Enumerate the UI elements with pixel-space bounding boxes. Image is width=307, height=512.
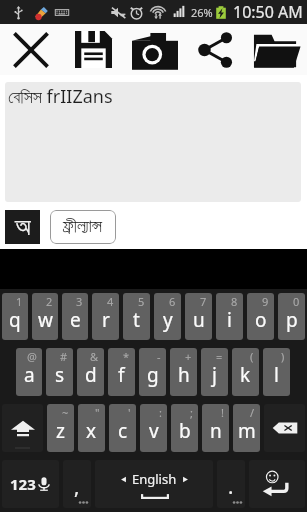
staticText: x (86, 418, 97, 444)
staticText: f (118, 362, 125, 388)
staticText: + (185, 349, 192, 364)
staticText: d (85, 362, 97, 388)
staticText: : (159, 405, 162, 420)
button[interactable]: # (46, 348, 73, 396)
staticText: English (132, 470, 177, 488)
staticText: q (9, 307, 21, 333)
button[interactable]: & (77, 348, 104, 396)
button[interactable]: Numbers and voice input (2, 460, 59, 508)
staticText: m (238, 418, 256, 444)
staticText: 26% (191, 5, 213, 20)
button[interactable]: ' (109, 404, 136, 452)
button[interactable]: 8 (216, 293, 243, 340)
staticText: ( (250, 349, 254, 364)
staticText: s (55, 362, 65, 388)
button[interactable]: বেসিস frIIZans (5, 82, 301, 202)
staticText: * (123, 349, 130, 364)
button[interactable]: 1 (2, 293, 28, 340)
staticText: . (228, 473, 234, 500)
button[interactable]: 7 (185, 293, 212, 340)
staticText: r (102, 307, 110, 333)
button[interactable]: ! (202, 404, 229, 452)
staticText: # (60, 349, 68, 364)
staticText: 4 (107, 294, 114, 309)
staticText: w (38, 307, 53, 333)
button[interactable]: 2 (32, 293, 58, 340)
staticText: , (74, 473, 80, 500)
button[interactable]: 3 (62, 293, 88, 340)
button[interactable]: * (108, 348, 135, 396)
staticText: a (24, 362, 35, 388)
staticText: 0 (293, 294, 300, 309)
button[interactable]: 4 (92, 293, 119, 340)
button[interactable]: Backspace (264, 404, 305, 452)
button[interactable]: Camera (124, 24, 185, 75)
staticText: c (118, 418, 128, 444)
button[interactable]: Save (62, 24, 124, 75)
staticText: 5 (138, 294, 145, 309)
button[interactable]: অ (5, 210, 40, 244)
staticText: p (286, 307, 298, 333)
staticText: u (193, 307, 205, 333)
button[interactable]: Share (185, 24, 246, 75)
staticText: j (212, 362, 217, 388)
staticText: 8 (231, 294, 238, 309)
button[interactable]: : (140, 404, 167, 452)
button[interactable]: ফ্রীল্যান্স (50, 210, 116, 244)
staticText: b (179, 418, 191, 444)
button[interactable]: = (201, 348, 228, 396)
button[interactable]: 5 (123, 293, 150, 340)
button[interactable]: - (139, 348, 166, 396)
staticText: @ (27, 349, 37, 364)
button[interactable]: ) (263, 348, 290, 396)
staticText: 1 (16, 294, 23, 309)
staticText: n (210, 418, 222, 444)
staticText: 2 (46, 294, 53, 309)
staticText: 9 (262, 294, 269, 309)
staticText: k (240, 362, 251, 388)
staticText: h (178, 362, 190, 388)
staticText: " (95, 405, 100, 420)
staticText: 3 (76, 294, 83, 309)
staticText: ! (221, 405, 224, 420)
staticText: ফ্রীল্যান্স (63, 218, 103, 236)
button[interactable]: 6 (154, 293, 181, 340)
button[interactable]: + (170, 348, 197, 396)
button[interactable]: ; (171, 404, 198, 452)
staticText: ) (281, 349, 285, 364)
button[interactable]: Enter (249, 460, 305, 508)
button[interactable]: Open folder (246, 24, 307, 75)
button[interactable]: Space (95, 460, 213, 508)
button[interactable]: @ (16, 348, 42, 396)
button[interactable]: Close (0, 24, 62, 75)
button[interactable]: 0 (278, 293, 305, 340)
staticText: t (133, 307, 140, 333)
staticText: o (255, 307, 267, 333)
button[interactable]: Shift (2, 404, 43, 452)
staticText: ; (190, 405, 193, 420)
staticText: y (163, 307, 173, 333)
button[interactable]: Period (217, 460, 245, 508)
staticText: ~ (62, 405, 69, 420)
staticText: z (56, 418, 65, 444)
staticText: - (157, 349, 161, 364)
staticText: অ (15, 215, 31, 240)
button[interactable]: " (78, 404, 105, 452)
staticText: 10:50 AM (233, 1, 303, 23)
staticText: 7 (200, 294, 207, 309)
button[interactable]: 9 (247, 293, 274, 340)
button[interactable]: Comma (63, 460, 91, 508)
staticText: ' (128, 405, 131, 420)
button[interactable]: / (233, 404, 260, 452)
staticText: v (149, 418, 159, 444)
staticText: 6 (169, 294, 176, 309)
staticText: & (90, 349, 99, 364)
staticText: = (216, 349, 223, 364)
staticText: i (227, 307, 232, 333)
button[interactable]: ( (232, 348, 259, 396)
staticText: l (274, 362, 279, 388)
staticText: 123 (10, 474, 36, 494)
button[interactable]: ~ (47, 404, 74, 452)
staticText: বেসিস frIIZans (8, 84, 113, 109)
staticText: g (147, 362, 159, 388)
